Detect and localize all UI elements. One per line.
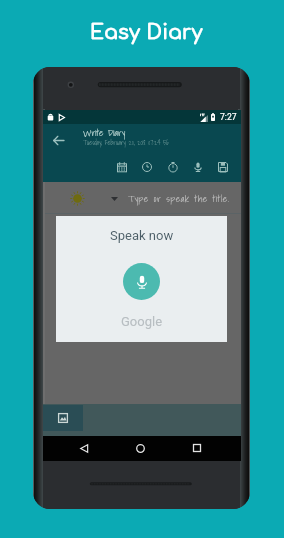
staticText: Tuesday, February 20, 2018 07:24 56	[83, 137, 169, 147]
button[interactable]: Timer	[164, 158, 182, 176]
button[interactable]: Calendar	[113, 158, 131, 176]
button[interactable]: Choose weather	[108, 193, 120, 205]
button[interactable]: Back	[74, 438, 94, 458]
button[interactable]: Clock	[138, 158, 156, 176]
staticText: Type or speak the title.	[128, 190, 230, 206]
staticText: 7:27	[220, 112, 237, 122]
button[interactable]: Diary title	[83, 125, 213, 151]
button[interactable]: Recent apps	[187, 438, 207, 458]
button[interactable]: Attach photo	[43, 405, 83, 431]
button[interactable]: Save	[214, 158, 232, 176]
staticText: Google	[121, 314, 163, 329]
button[interactable]: Start voice input	[123, 263, 160, 300]
button[interactable]: Back	[47, 129, 69, 151]
staticText: Speak now	[110, 228, 174, 243]
button[interactable]: Weather	[66, 187, 88, 209]
staticText: Easy Diary	[90, 21, 203, 43]
button[interactable]: Home	[130, 438, 150, 458]
button[interactable]: Voice input	[189, 158, 207, 176]
button[interactable]: Title field	[128, 187, 238, 209]
staticText: Write Diary	[83, 125, 126, 140]
